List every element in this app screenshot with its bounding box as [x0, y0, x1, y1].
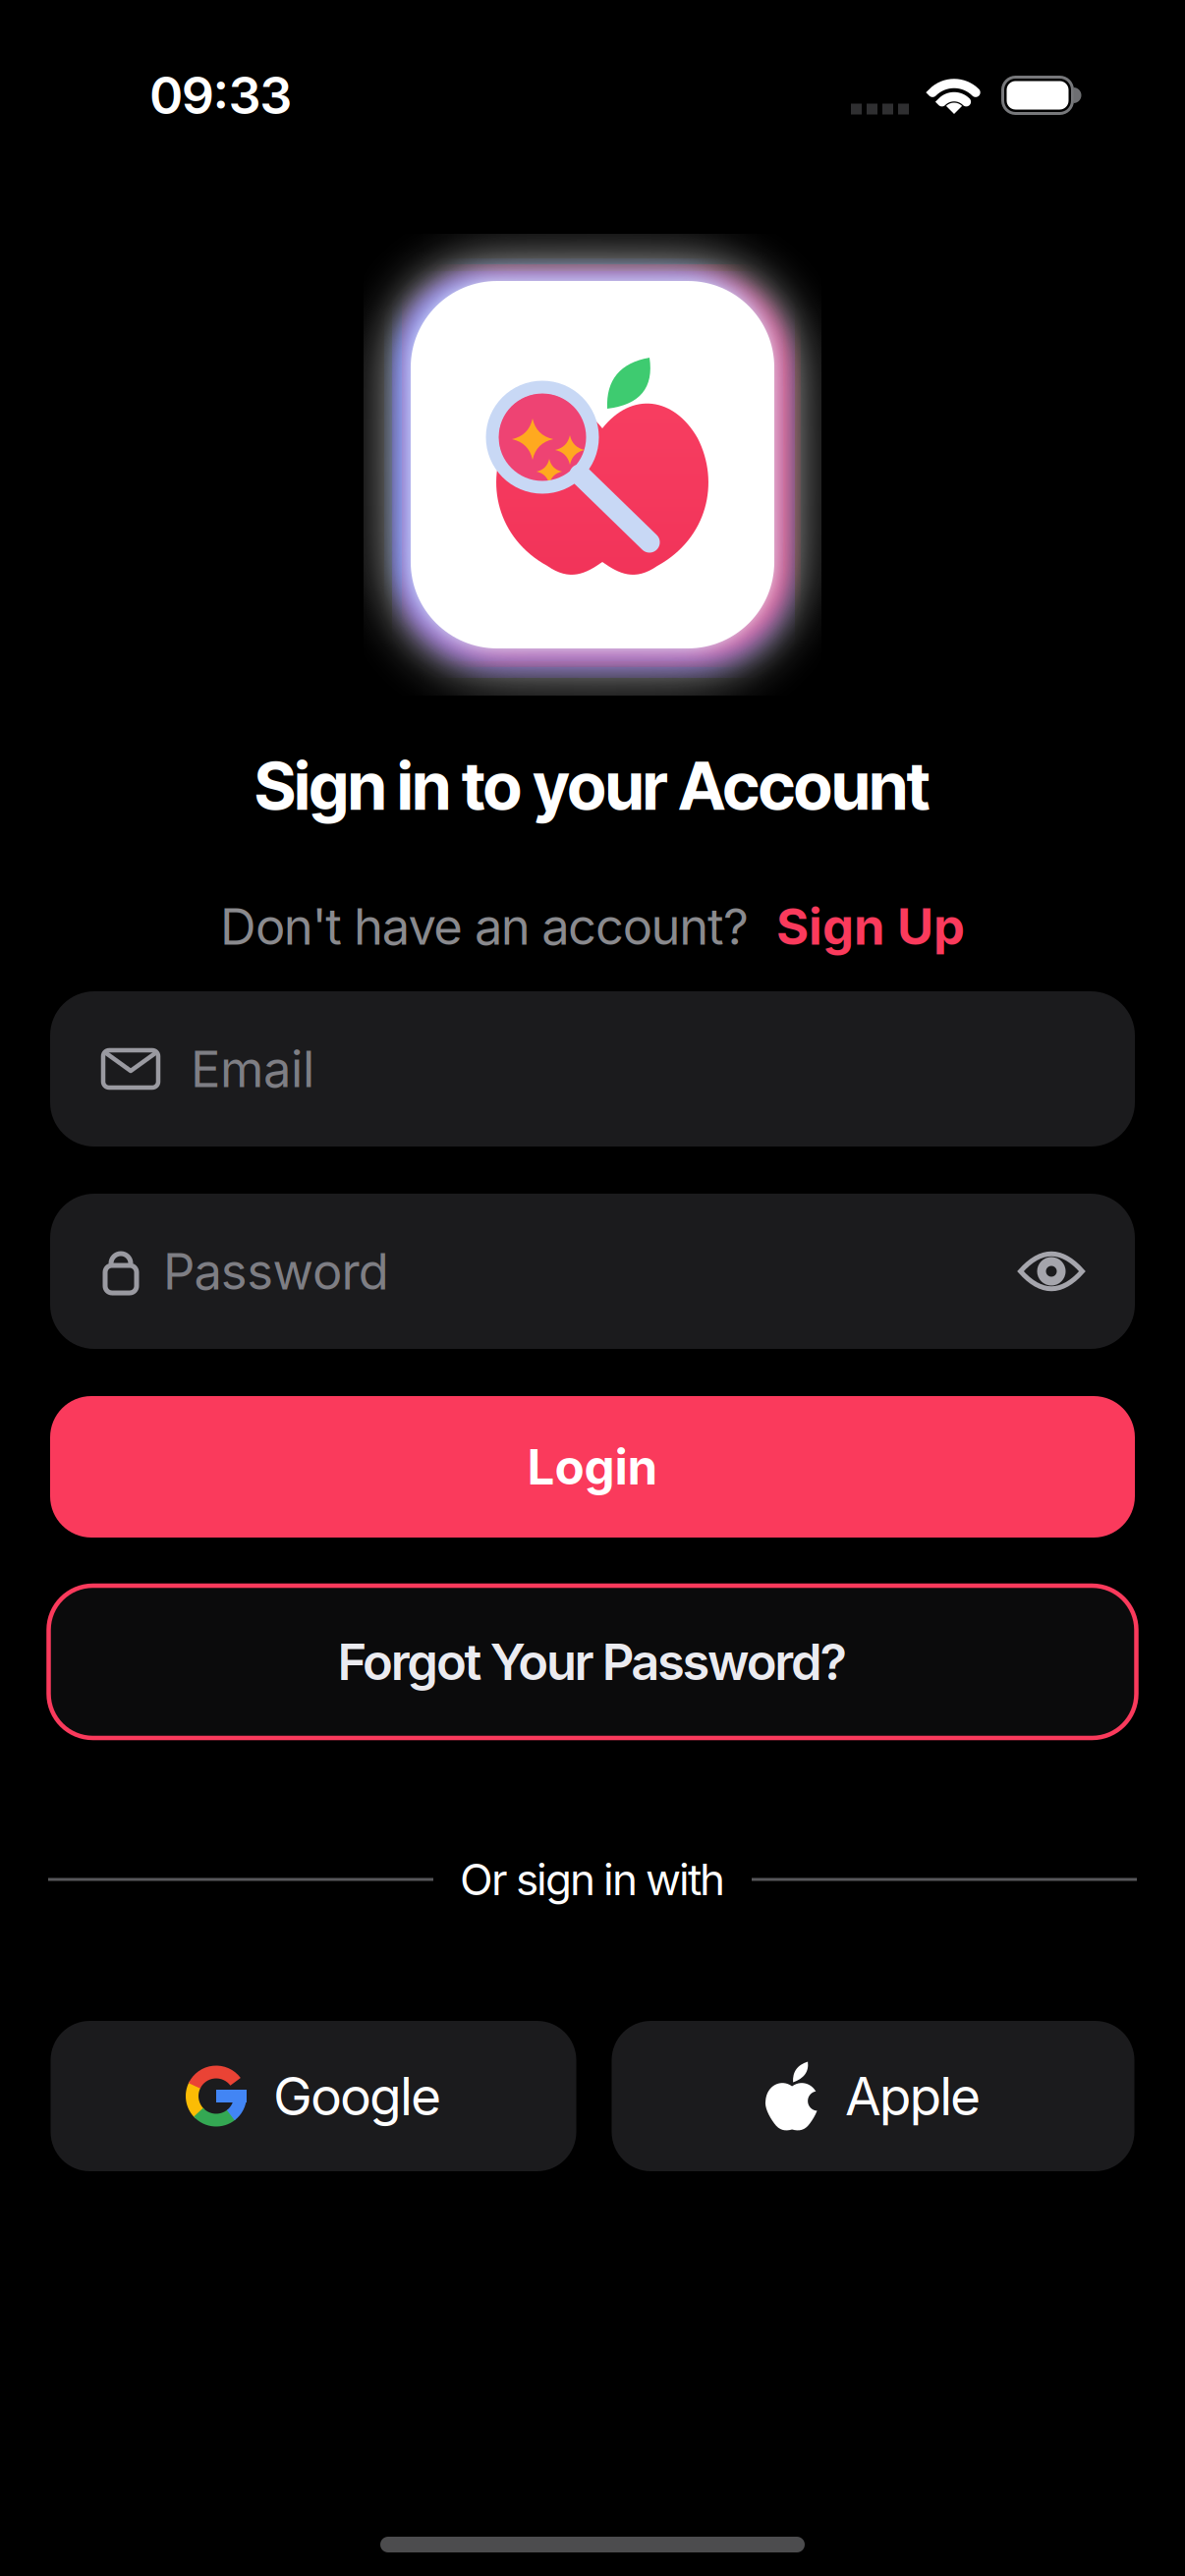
- staticText: Password: [163, 1242, 389, 1301]
- button[interactable]: Email: [50, 991, 1135, 1147]
- staticText: Don't have an account?: [220, 897, 749, 956]
- button[interactable]: Password: [50, 1194, 1135, 1349]
- button[interactable]: Sign Up: [776, 897, 965, 956]
- staticText: Sign Up: [776, 897, 965, 956]
- staticText: Login: [527, 1438, 658, 1495]
- button[interactable]: Google: [51, 2021, 576, 2171]
- staticText: Email: [191, 1040, 314, 1098]
- staticText: Forgot Your Password?: [338, 1632, 847, 1691]
- staticText: Or sign in with: [460, 1854, 725, 1905]
- button[interactable]: Login: [50, 1396, 1135, 1538]
- staticText: Sign in to your Account: [255, 746, 930, 826]
- staticText: 09:33: [149, 65, 292, 125]
- staticText: Apple: [845, 2065, 981, 2127]
- button[interactable]: Forgot Your Password?: [49, 1586, 1136, 1738]
- staticText: Google: [273, 2065, 441, 2127]
- button[interactable]: Apple: [612, 2021, 1134, 2171]
